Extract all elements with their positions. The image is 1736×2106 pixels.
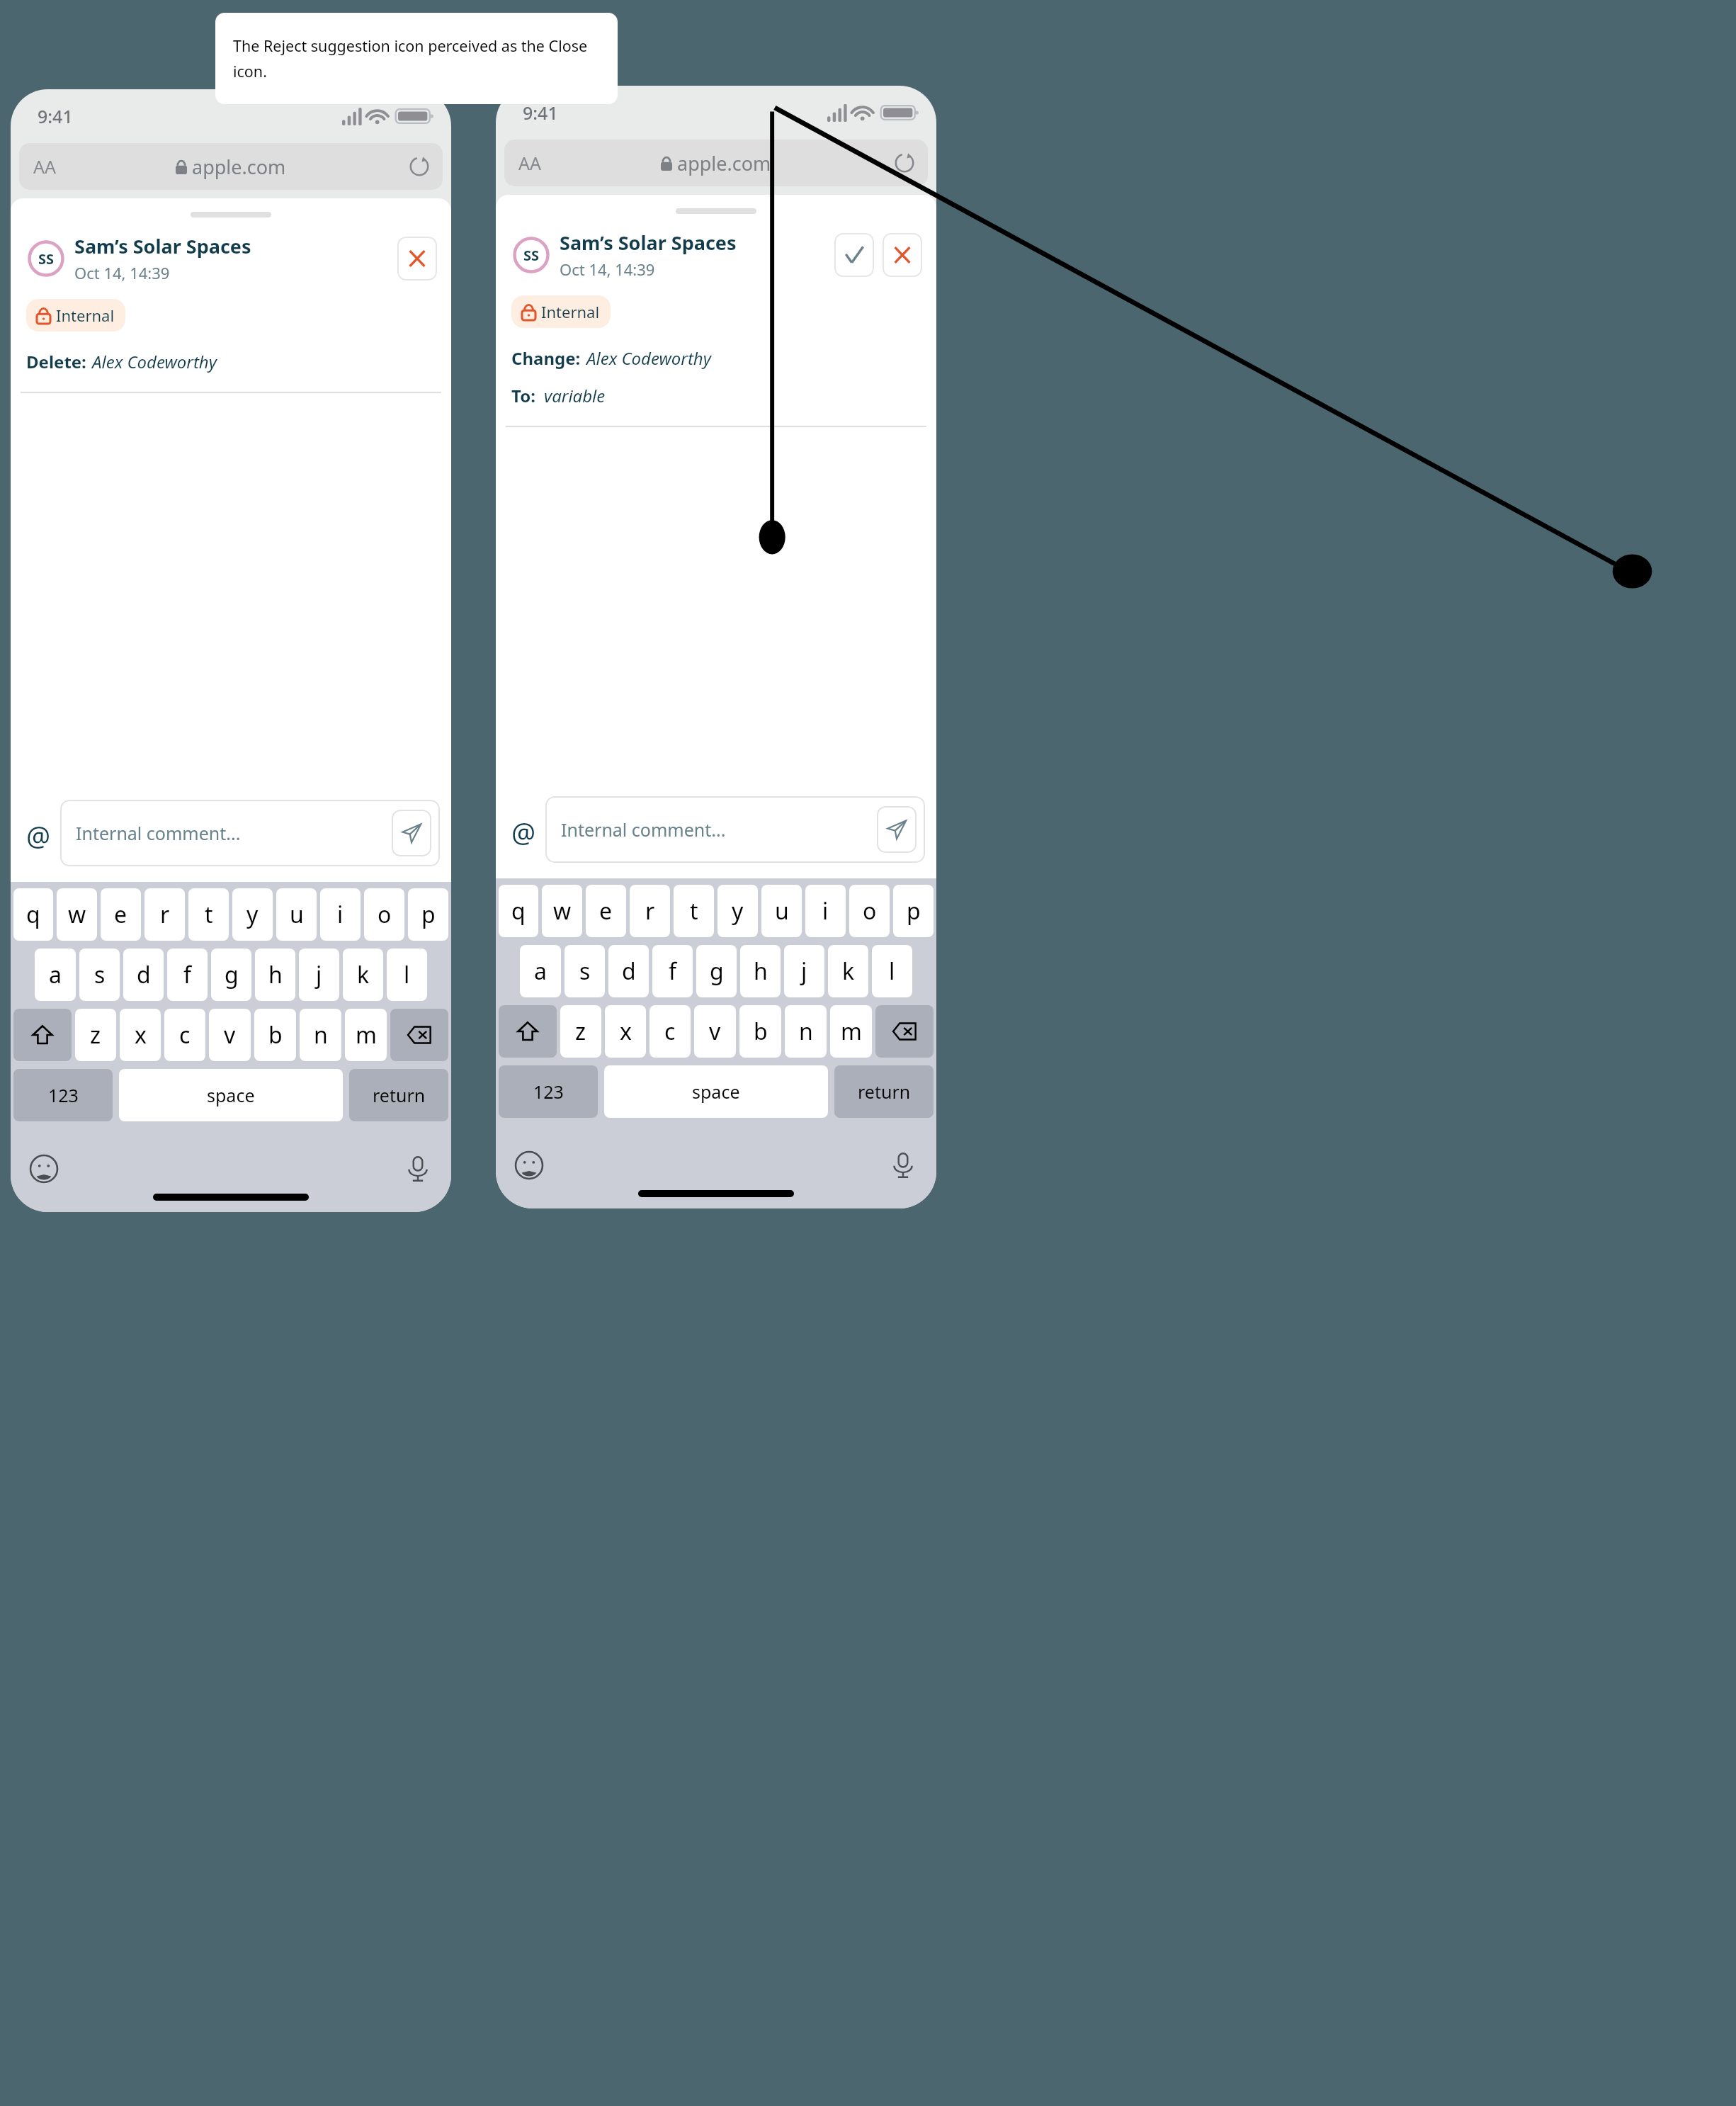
button[interactable]: Shift — [13, 1009, 72, 1061]
button[interactable]: space — [604, 1065, 828, 1118]
staticText: u — [775, 895, 789, 927]
button[interactable]: f — [167, 949, 208, 1001]
button[interactable]: g — [696, 945, 737, 997]
staticText: AA — [33, 154, 56, 179]
staticText: apple.com — [192, 154, 286, 180]
button[interactable]: e — [586, 885, 626, 937]
button[interactable]: apple.com — [19, 143, 443, 190]
button[interactable]: Emoji — [514, 1150, 544, 1180]
staticText: Sam’s Solar Spaces — [74, 233, 251, 259]
button[interactable]: p — [408, 888, 448, 941]
button[interactable]: Emoji — [29, 1154, 59, 1184]
button[interactable]: a — [520, 945, 561, 997]
staticText: Oct 14, 14:39 — [74, 262, 170, 283]
button[interactable]: x — [605, 1005, 646, 1058]
button[interactable]: h — [740, 945, 781, 997]
button[interactable]: s — [565, 945, 605, 997]
button[interactable]: q — [499, 885, 538, 937]
button[interactable]: e — [101, 888, 141, 941]
button[interactable]: z — [560, 1005, 601, 1058]
button[interactable]: Mention — [507, 813, 540, 846]
button[interactable]: i — [320, 888, 361, 941]
staticText: z — [90, 1019, 101, 1051]
button[interactable]: o — [364, 888, 404, 941]
button[interactable]: r — [630, 885, 670, 937]
button[interactable]: c — [649, 1005, 691, 1058]
button[interactable]: Mention — [22, 817, 55, 849]
button[interactable]: d — [123, 949, 164, 1001]
button[interactable]: m — [830, 1005, 872, 1058]
button[interactable]: 123 — [13, 1069, 113, 1121]
button[interactable]: Dictation — [888, 1150, 918, 1180]
button[interactable]: l — [387, 949, 427, 1001]
button[interactable]: z — [75, 1009, 116, 1061]
button[interactable]: j — [784, 945, 824, 997]
button[interactable]: h — [255, 949, 295, 1001]
button[interactable]: k — [343, 949, 383, 1001]
button[interactable]: v — [694, 1005, 736, 1058]
staticText: l — [889, 956, 895, 987]
staticText: s — [94, 959, 106, 990]
staticText: 123 — [48, 1083, 79, 1107]
button[interactable]: Send — [392, 810, 431, 856]
button[interactable]: Internal — [26, 299, 125, 332]
button[interactable]: y — [717, 885, 758, 937]
button[interactable]: Send — [877, 806, 917, 853]
button[interactable]: m — [345, 1009, 387, 1061]
button[interactable]: x — [120, 1009, 161, 1061]
button[interactable]: Reject suggestion — [397, 237, 437, 281]
button[interactable]: t — [674, 885, 714, 937]
staticText: q — [511, 895, 526, 927]
button[interactable]: Internal — [511, 295, 611, 328]
staticText: w — [553, 895, 572, 927]
staticText: s — [579, 956, 591, 987]
button[interactable]: c — [164, 1009, 205, 1061]
button[interactable]: return — [834, 1065, 934, 1118]
button[interactable]: n — [300, 1009, 341, 1061]
button[interactable]: Reject suggestion — [883, 233, 922, 277]
button[interactable]: r — [144, 888, 185, 941]
button[interactable]: q — [13, 888, 53, 941]
button[interactable]: Internal comment... — [60, 800, 440, 866]
staticText: z — [575, 1016, 586, 1047]
button[interactable]: p — [893, 885, 934, 937]
button[interactable]: w — [542, 885, 582, 937]
button[interactable]: Backspace — [390, 1009, 448, 1061]
button[interactable]: a — [35, 949, 76, 1001]
button[interactable]: u — [276, 888, 317, 941]
staticText: Oct 14, 14:39 — [560, 259, 655, 280]
button[interactable]: return — [349, 1069, 448, 1121]
button[interactable]: u — [761, 885, 802, 937]
button[interactable]: Shift — [499, 1005, 557, 1058]
staticText: f — [183, 959, 192, 990]
button[interactable]: 123 — [499, 1065, 598, 1118]
button[interactable]: f — [652, 945, 693, 997]
button[interactable]: space — [119, 1069, 343, 1121]
button[interactable]: d — [608, 945, 649, 997]
button[interactable]: v — [209, 1009, 251, 1061]
button[interactable]: apple.com — [504, 140, 928, 186]
button[interactable]: Dictation — [403, 1154, 433, 1184]
button[interactable]: Reload — [892, 151, 917, 175]
button[interactable]: Backspace — [875, 1005, 934, 1058]
button[interactable]: i — [805, 885, 846, 937]
button[interactable]: n — [785, 1005, 827, 1058]
button[interactable]: Accept suggestion — [834, 233, 874, 277]
staticText: m — [841, 1016, 862, 1047]
button[interactable]: g — [211, 949, 251, 1001]
staticText: o — [863, 895, 877, 927]
button[interactable]: s — [79, 949, 120, 1001]
button[interactable]: Reload — [407, 154, 431, 179]
button[interactable]: y — [232, 888, 273, 941]
button[interactable]: w — [57, 888, 97, 941]
staticText: x — [135, 1019, 147, 1051]
button[interactable]: l — [872, 945, 912, 997]
button[interactable]: t — [188, 888, 229, 941]
button[interactable]: b — [254, 1009, 296, 1061]
button[interactable]: k — [828, 945, 868, 997]
button[interactable]: b — [739, 1005, 781, 1058]
button[interactable]: Internal comment... — [545, 796, 925, 863]
button[interactable]: j — [299, 949, 339, 1001]
staticText: Internal — [541, 301, 600, 322]
button[interactable]: o — [849, 885, 890, 937]
